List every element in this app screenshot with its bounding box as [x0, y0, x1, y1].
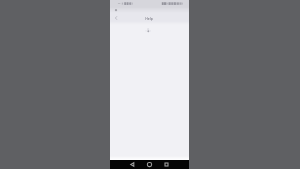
staticText: Help: [145, 16, 153, 21]
button[interactable]: Navigate up: [112, 14, 120, 22]
button[interactable]: Back: [130, 162, 135, 167]
button[interactable]: Recent apps: [164, 162, 169, 167]
button[interactable]: Home: [147, 162, 152, 167]
